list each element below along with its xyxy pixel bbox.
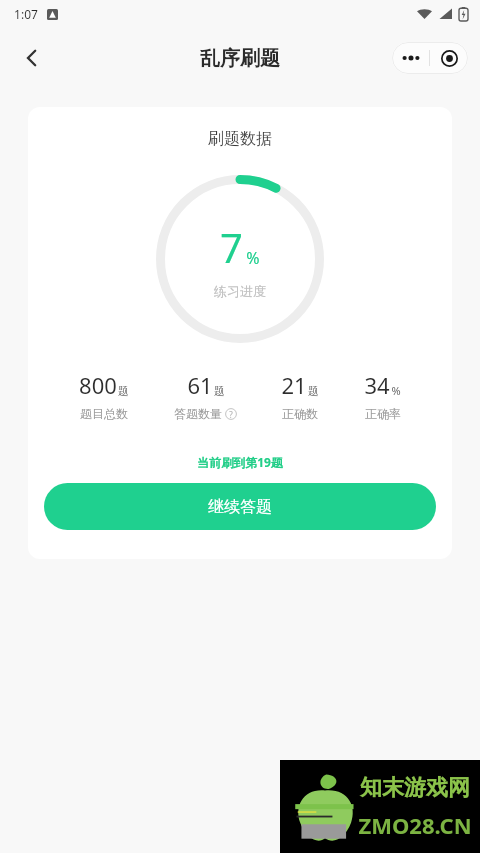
staticText: 知末游戏网: [360, 774, 470, 802]
staticText: 1:07: [14, 6, 38, 22]
staticText: 乱序刷题: [200, 46, 280, 71]
staticText: 800: [79, 370, 117, 400]
staticText: 刷题数据: [208, 129, 272, 149]
staticText: %: [391, 383, 401, 398]
staticText: 答题数量: [174, 406, 222, 421]
staticText: ZMO28.CN: [358, 810, 472, 840]
staticText: 正确率: [365, 406, 401, 421]
staticText: 正确数: [282, 406, 318, 421]
staticText: 练习进度: [214, 283, 266, 299]
staticText: 题目总数: [80, 406, 128, 421]
staticText: 21: [281, 370, 307, 400]
staticText: 继续答题: [208, 497, 272, 517]
button[interactable]: Close: [430, 42, 468, 74]
staticText: %: [246, 247, 260, 269]
staticText: 题: [308, 384, 319, 398]
staticText: ?: [229, 409, 233, 420]
staticText: 题: [214, 384, 225, 398]
staticText: 61: [187, 370, 213, 400]
staticText: 34: [364, 370, 390, 400]
button[interactable]: Help: [225, 408, 237, 420]
staticText: 7: [220, 220, 243, 274]
button[interactable]: 继续答题: [44, 483, 436, 530]
staticText: 当前刷到第19题: [197, 454, 283, 470]
button[interactable]: More: [392, 42, 429, 74]
button[interactable]: Back: [8, 34, 56, 82]
staticText: 题: [118, 384, 129, 398]
